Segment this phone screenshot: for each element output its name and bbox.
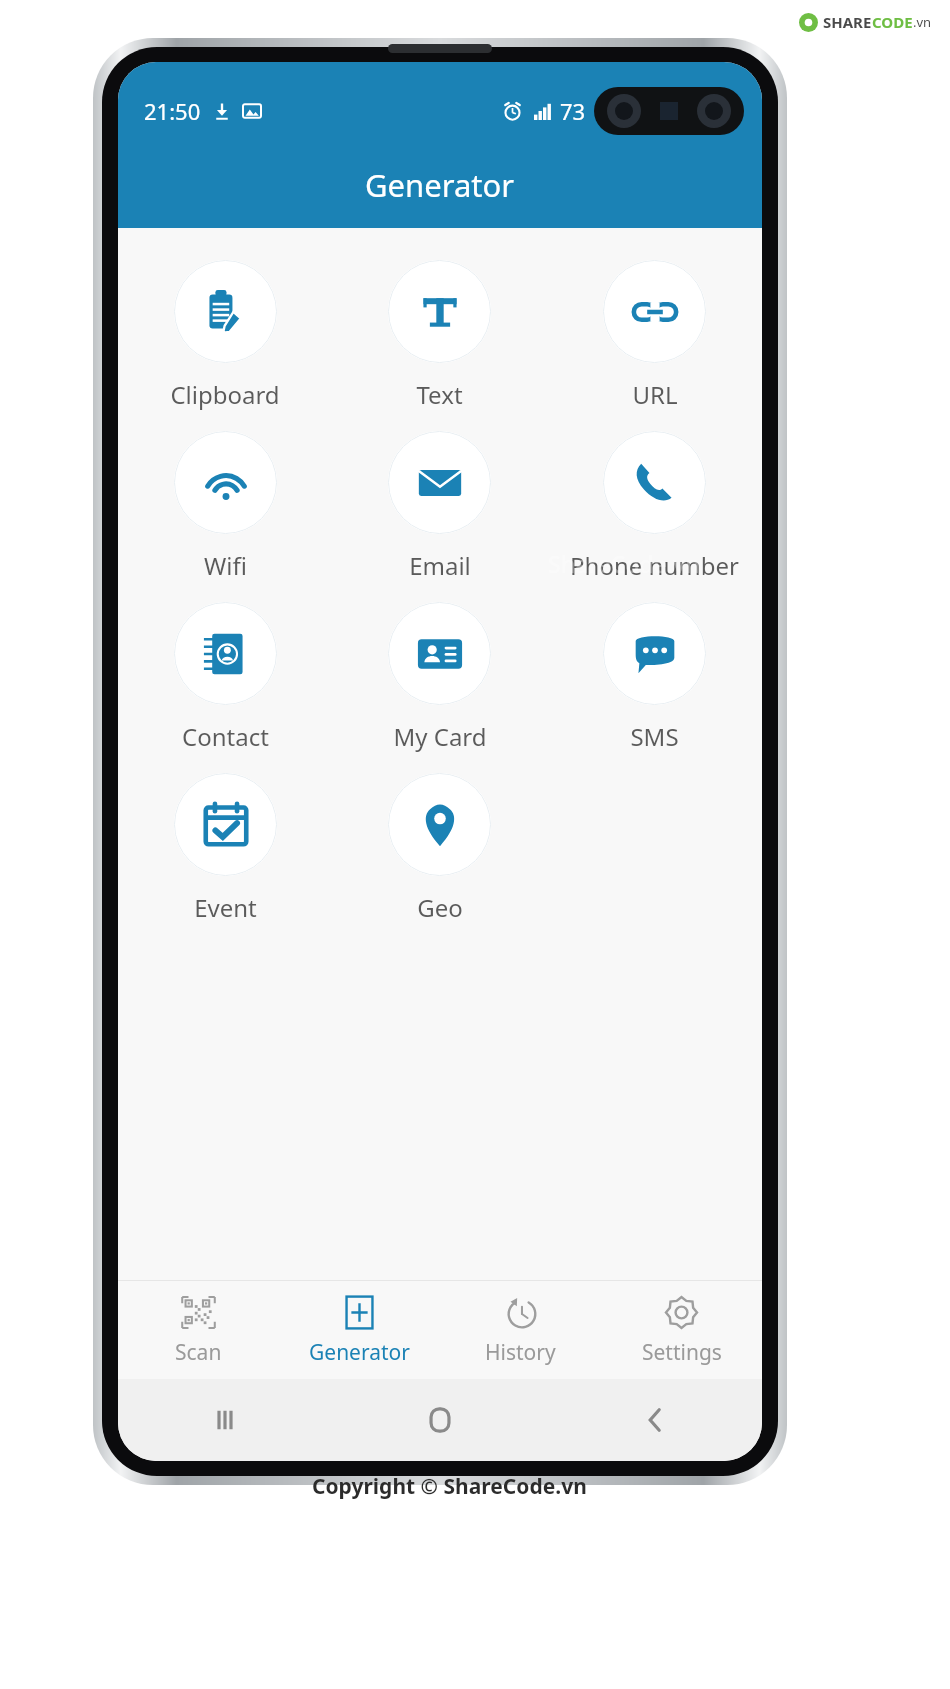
button[interactable]: SMS [597, 602, 712, 753]
button[interactable]: Email [382, 431, 497, 582]
button[interactable]: Generator [279, 1281, 440, 1379]
staticText: SMS [630, 720, 679, 753]
button[interactable]: Clipboard [164, 260, 286, 411]
staticText: 21:50 [144, 96, 201, 126]
button[interactable]: URL [597, 260, 712, 411]
button[interactable]: Event [168, 773, 283, 924]
staticText: My Card [393, 720, 487, 753]
staticText: Phone number [570, 549, 739, 582]
staticText: History [485, 1338, 556, 1367]
staticText: Scan [175, 1338, 222, 1367]
staticText: Settings [642, 1338, 722, 1367]
button[interactable]: Recent apps [118, 1379, 332, 1461]
staticText: Email [409, 549, 471, 582]
staticText: SHARE [823, 12, 872, 32]
staticText: CODE [872, 12, 913, 32]
staticText: Generator [309, 1338, 410, 1367]
staticText: 73 [560, 96, 586, 126]
staticText: Clipboard [170, 378, 280, 411]
button[interactable]: My Card [382, 602, 497, 753]
staticText: Contact [182, 720, 269, 753]
staticText: .vn [913, 13, 932, 31]
staticText: Wifi [204, 549, 247, 582]
button[interactable]: Text [382, 260, 497, 411]
button[interactable]: Phone number [564, 431, 745, 582]
button[interactable]: Geo [382, 773, 497, 924]
button[interactable]: Settings [601, 1281, 762, 1379]
button[interactable]: Wifi [168, 431, 283, 582]
staticText: Generator [365, 164, 515, 206]
staticText: Text [416, 378, 463, 411]
staticText: URL [632, 378, 678, 411]
button[interactable]: Back [547, 1379, 762, 1461]
staticText: Geo [417, 891, 463, 924]
button[interactable]: Home [332, 1379, 547, 1461]
button[interactable]: Contact [168, 602, 283, 753]
staticText: Copyright © ShareCode.vn [312, 1472, 587, 1501]
button[interactable]: History [440, 1281, 601, 1379]
button[interactable]: Scan [118, 1281, 279, 1379]
staticText: Event [194, 891, 257, 924]
staticText: ShareCode.vn [548, 548, 700, 579]
